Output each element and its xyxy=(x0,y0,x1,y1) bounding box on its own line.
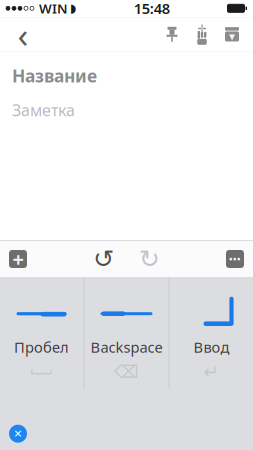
staticText: ↵ xyxy=(203,361,219,382)
staticText: 15:48 xyxy=(134,0,170,18)
button[interactable]: More xyxy=(226,250,244,268)
staticText: Название xyxy=(12,64,97,87)
button[interactable]: Gesture input xyxy=(187,17,217,51)
button[interactable]: Redo xyxy=(135,246,163,272)
button[interactable]: Пробел xyxy=(0,278,83,390)
staticText: Заметка xyxy=(12,99,75,120)
staticText: ◗ xyxy=(70,1,76,15)
button[interactable]: Archive xyxy=(217,17,247,51)
staticText: Ввод xyxy=(193,337,229,357)
button[interactable]: Pin xyxy=(157,17,187,51)
button[interactable]: Back xyxy=(6,17,40,51)
staticText: ⌫ xyxy=(114,362,139,382)
staticText: ••• xyxy=(229,253,241,265)
button[interactable]: Ввод xyxy=(169,278,253,390)
button[interactable]: Add xyxy=(9,250,27,268)
button[interactable]: Undo xyxy=(89,246,117,272)
staticText: ✕ xyxy=(13,428,22,440)
staticText: WIN xyxy=(39,0,68,17)
button[interactable]: Close xyxy=(9,425,27,443)
staticText: Пробел xyxy=(14,337,69,357)
staticText: Backspace xyxy=(90,337,162,357)
staticText: ▾ xyxy=(229,30,235,43)
staticText: ‹ xyxy=(17,11,28,57)
staticText: ✛ xyxy=(197,23,206,35)
staticText: ↻ xyxy=(139,245,160,273)
button[interactable]: Backspace xyxy=(84,278,168,390)
staticText: ↺ xyxy=(93,245,114,273)
staticText: + xyxy=(12,246,23,272)
